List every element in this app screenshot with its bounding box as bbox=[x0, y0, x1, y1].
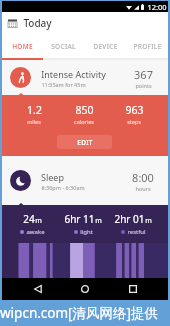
button[interactable]: Recents bbox=[122, 278, 144, 300]
button[interactable]: Sleep bbox=[2, 156, 168, 205]
button[interactable]: PROFILE bbox=[126, 34, 168, 58]
button[interactable]: DEVICE bbox=[84, 34, 126, 58]
staticText: 24 bbox=[23, 212, 35, 226]
staticText: HOME bbox=[12, 42, 33, 51]
staticText: wipcn.com[清风网络]提供 bbox=[0, 304, 158, 322]
staticText: 367 bbox=[134, 67, 153, 82]
staticText: DEVICE bbox=[93, 42, 118, 51]
staticText: hours bbox=[135, 185, 151, 192]
button[interactable]: Back bbox=[27, 278, 49, 300]
staticText: 963 bbox=[125, 103, 144, 117]
staticText: Sleep bbox=[41, 171, 64, 183]
staticText: light bbox=[80, 228, 93, 236]
staticText: m bbox=[35, 216, 42, 226]
button[interactable]: Intense Activity bbox=[2, 60, 168, 95]
staticText: SOCIAL bbox=[51, 42, 76, 51]
staticText: 8:36pm - 6:30am bbox=[41, 184, 85, 191]
staticText: EDIT bbox=[77, 138, 93, 147]
staticText: 850 bbox=[75, 103, 94, 117]
staticText: Intense Activity bbox=[41, 68, 106, 80]
staticText: 6hr 11 bbox=[64, 212, 95, 226]
staticText: 12:00 bbox=[147, 2, 167, 12]
staticText: calories bbox=[74, 118, 94, 125]
button[interactable]: HOME bbox=[2, 34, 43, 58]
staticText: Today bbox=[23, 16, 52, 30]
staticText: PROFILE bbox=[133, 42, 162, 51]
staticText: points bbox=[135, 82, 152, 89]
staticText: m bbox=[145, 216, 152, 226]
staticText: 11:55am for 45m bbox=[41, 81, 86, 88]
button[interactable]: EDIT bbox=[57, 135, 112, 149]
staticText: miles bbox=[27, 118, 41, 125]
staticText: steps bbox=[127, 118, 141, 125]
staticText: 8:00 bbox=[132, 170, 154, 185]
staticText: m bbox=[95, 216, 102, 226]
button[interactable]: SOCIAL bbox=[43, 34, 84, 58]
staticText: 1.2 bbox=[27, 103, 42, 117]
staticText: restful bbox=[127, 228, 146, 236]
staticText: 2hr 01 bbox=[114, 212, 145, 226]
other: Calendar bbox=[8, 19, 17, 28]
button[interactable]: Home bbox=[74, 278, 96, 300]
staticText: awake bbox=[26, 228, 45, 236]
